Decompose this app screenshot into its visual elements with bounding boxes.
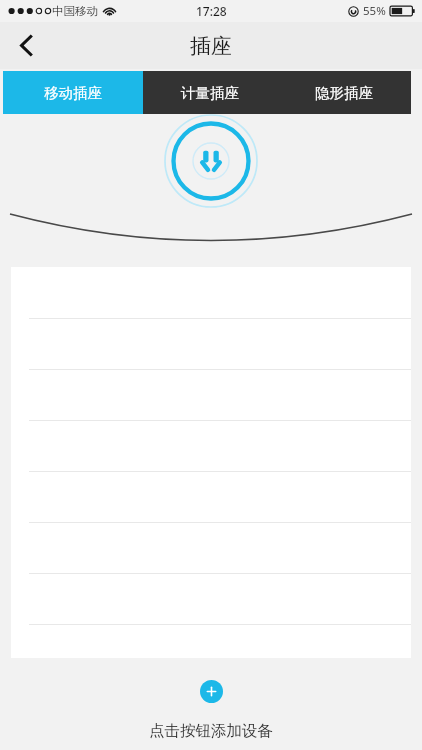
staticText: 计量插座 [181,84,239,102]
button[interactable] [11,471,411,522]
button[interactable] [11,522,411,573]
button[interactable] [11,573,411,624]
button[interactable]: 移动插座 [3,71,143,114]
button[interactable]: 隐形插座 [277,71,411,114]
button[interactable]: Add device [200,680,223,703]
button[interactable] [11,624,411,658]
staticText: 55% [363,3,386,19]
button[interactable]: Back [0,22,54,69]
button[interactable]: 计量插座 [143,71,277,114]
staticText: 隐形插座 [315,84,373,102]
staticText: 插座 [190,33,232,59]
staticText: 17:28 [196,3,227,19]
button[interactable] [11,318,411,369]
staticText: 点击按钮添加设备 [149,721,273,741]
staticText: 移动插座 [44,84,102,102]
staticText: 中国移动 [52,4,98,18]
button[interactable] [11,369,411,420]
button[interactable] [11,420,411,471]
